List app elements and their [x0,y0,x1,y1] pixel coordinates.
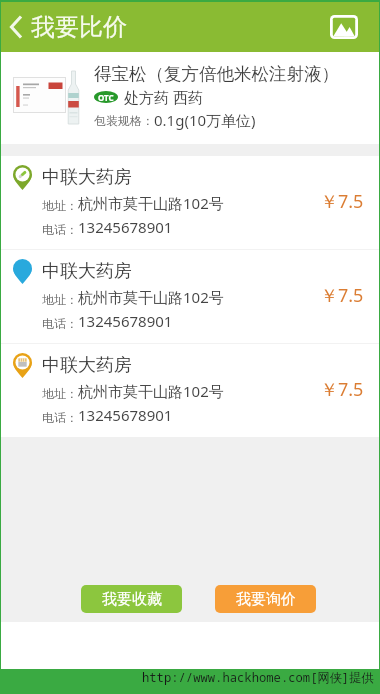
staticText: 地址： [42,292,78,307]
staticText: 地址： [42,198,78,213]
button[interactable]: 中联大药房 [1,344,379,437]
staticText: http://www.hackhome.com[网侠]提供 [142,669,374,686]
staticText: ￥7.5 [320,283,364,308]
staticText: 地址： [42,386,78,401]
staticText: 中联大药房 [42,260,132,283]
staticText: 我要收藏 [102,590,162,609]
button[interactable]: Photos [312,2,379,52]
staticText: 处方药 西药 [124,87,203,107]
button[interactable]: 中联大药房 [1,250,379,343]
staticText: 电话： [42,410,78,425]
staticText: 中联大药房 [42,354,132,377]
button[interactable]: 中联大药房 [1,156,379,249]
button[interactable]: 我要询价 [215,585,316,613]
staticText: 包装规格： [94,113,154,128]
staticText: 杭州市莫干山路102号 [78,381,224,401]
staticText: 杭州市莫干山路102号 [78,287,224,307]
staticText: 13245678901 [78,405,173,425]
staticText: 0.1g(10万单位) [154,110,256,130]
staticText: 得宝松（复方倍他米松注射液） [94,63,339,85]
button[interactable]: 我要收藏 [81,585,182,613]
staticText: OTC [98,92,114,103]
button[interactable]: 我要比价 [1,2,139,52]
staticText: 我要比价 [31,12,127,42]
button[interactable]: 得宝松（复方倍他米松注射液） [1,52,379,144]
staticText: 杭州市莫干山路102号 [78,193,224,213]
staticText: ￥7.5 [320,377,364,402]
staticText: 13245678901 [78,311,173,331]
staticText: 电话： [42,316,78,331]
staticText: ￥7.5 [320,189,364,214]
staticText: 13245678901 [78,217,173,237]
staticText: 电话： [42,222,78,237]
staticText: 中联大药房 [42,166,132,189]
staticText: 我要询价 [236,590,296,609]
